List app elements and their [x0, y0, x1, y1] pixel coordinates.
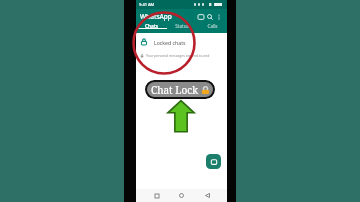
button[interactable]: Home [176, 190, 187, 201]
staticText: Chats [145, 23, 158, 29]
staticText: Your personal messages are end-to-end en… [146, 53, 223, 58]
staticText: Calls [207, 23, 218, 29]
button[interactable]: More options [214, 12, 223, 21]
button[interactable]: Search [205, 12, 214, 21]
button[interactable]: Camera [196, 12, 205, 21]
button[interactable]: Locked chats [136, 33, 227, 60]
button[interactable]: Status [167, 23, 197, 29]
staticText: WhatsApp [140, 12, 172, 21]
button[interactable]: Calls [197, 23, 227, 29]
staticText: Locked chats [154, 39, 186, 46]
staticText: 9:41 AM [139, 2, 155, 7]
button[interactable]: Chats [136, 23, 167, 29]
button[interactable]: Recents [151, 190, 162, 201]
button[interactable]: Chat Lock [145, 80, 215, 99]
staticText: Chat Lock [151, 83, 199, 97]
button[interactable]: Back [202, 190, 213, 201]
button[interactable]: New chat [206, 154, 221, 169]
staticText: Status [175, 23, 189, 29]
